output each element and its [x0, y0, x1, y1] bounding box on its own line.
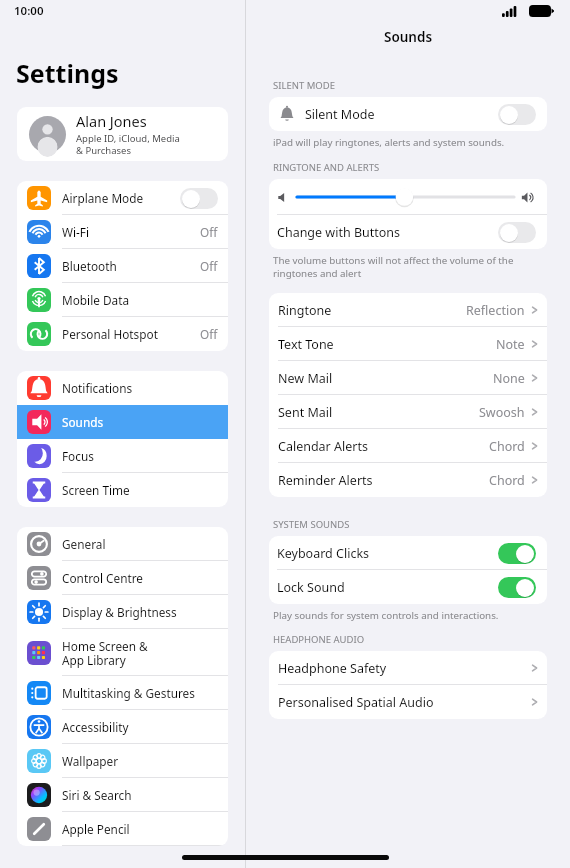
- staticText: Personal Hotspot: [62, 326, 200, 342]
- staticText: Note: [496, 336, 525, 353]
- button[interactable]: Text Tone: [269, 327, 547, 361]
- staticText: None: [493, 370, 525, 387]
- button[interactable]: Focus: [17, 439, 228, 473]
- button[interactable]: Accessibility: [17, 710, 228, 744]
- staticText: iPad will play ringtones, alerts and sys…: [273, 136, 505, 149]
- staticText: Off: [200, 224, 218, 240]
- staticText: Headphone Safety: [278, 660, 531, 677]
- staticText: 10:00: [14, 3, 44, 19]
- staticText: HEADPHONE AUDIO: [273, 633, 365, 646]
- staticText: Multitasking & Gestures: [62, 685, 218, 701]
- staticText: Mobile Data: [62, 292, 218, 308]
- staticText: Screen Time: [62, 482, 218, 498]
- button[interactable]: Display & Brightness: [17, 595, 228, 629]
- button[interactable]: Calendar Alerts: [269, 429, 547, 463]
- staticText: Off: [200, 258, 218, 274]
- staticText: SYSTEM SOUNDS: [273, 518, 350, 531]
- button[interactable]: Reminder Alerts: [269, 463, 547, 497]
- staticText: Wallpaper: [62, 753, 218, 769]
- staticText: RINGTONE AND ALERTS: [273, 161, 380, 174]
- staticText: Reminder Alerts: [278, 472, 489, 489]
- staticText: Chord: [489, 472, 525, 489]
- button[interactable]: On: [498, 577, 536, 598]
- staticText: Display & Brightness: [62, 604, 218, 620]
- staticText: Calendar Alerts: [278, 438, 489, 455]
- button[interactable]: Off: [498, 104, 536, 125]
- button[interactable]: Off: [180, 188, 218, 209]
- staticText: Bluetooth: [62, 258, 200, 274]
- staticText: Reflection: [466, 302, 525, 319]
- button[interactable]: Airplane Mode: [17, 181, 228, 215]
- staticText: Play sounds for system controls and inte…: [273, 609, 499, 622]
- staticText: New Mail: [278, 370, 493, 387]
- staticText: Notifications: [62, 380, 218, 396]
- staticText: Ringtone: [278, 302, 466, 319]
- button[interactable]: Control Centre: [17, 561, 228, 595]
- button[interactable]: Screen Time: [17, 473, 228, 507]
- button[interactable]: Off: [498, 222, 536, 243]
- button[interactable]: Sounds: [17, 405, 228, 439]
- staticText: Change with Buttons: [277, 224, 498, 241]
- button[interactable]: Multitasking & Gestures: [17, 676, 228, 710]
- button[interactable]: Sent Mail: [269, 395, 547, 429]
- staticText: The volume buttons will not affect the v…: [273, 254, 514, 280]
- button[interactable]: Keyboard Clicks: [269, 536, 547, 570]
- staticText: Off: [200, 326, 218, 342]
- staticText: Personalised Spatial Audio: [278, 694, 531, 711]
- button[interactable]: Personalised Spatial Audio: [269, 685, 547, 719]
- button[interactable]: [297, 186, 514, 208]
- button[interactable]: Personal Hotspot: [17, 317, 228, 351]
- button[interactable]: Headphone Safety: [269, 651, 547, 685]
- button[interactable]: Mobile Data: [17, 283, 228, 317]
- button[interactable]: On: [498, 543, 536, 564]
- staticText: Accessibility: [62, 719, 218, 735]
- button[interactable]: New Mail: [269, 361, 547, 395]
- button[interactable]: Lock Sound: [269, 570, 547, 604]
- button[interactable]: Ringtone: [269, 293, 547, 327]
- button[interactable]: Wi-Fi: [17, 215, 228, 249]
- button[interactable]: Bluetooth: [17, 249, 228, 283]
- button[interactable]: Siri & Search: [17, 778, 228, 812]
- staticText: Siri & Search: [62, 787, 218, 803]
- staticText: Swoosh: [479, 404, 525, 421]
- staticText: Apple Pencil: [62, 821, 218, 837]
- staticText: Silent Mode: [305, 106, 498, 123]
- staticText: Lock Sound: [277, 579, 498, 596]
- staticText: Apple ID, iCloud, Media & Purchases: [76, 132, 180, 157]
- staticText: Focus: [62, 448, 218, 464]
- staticText: Sent Mail: [278, 404, 479, 421]
- button[interactable]: Notifications: [17, 371, 228, 405]
- button[interactable]: Wallpaper: [17, 744, 228, 778]
- staticText: SILENT MODE: [273, 79, 335, 92]
- staticText: Chord: [489, 438, 525, 455]
- staticText: Sounds: [384, 28, 433, 46]
- button[interactable]: Home Screen & App Library: [17, 629, 228, 676]
- staticText: Keyboard Clicks: [277, 545, 498, 562]
- staticText: Home Screen & App Library: [62, 638, 218, 668]
- staticText: Airplane Mode: [62, 190, 180, 206]
- staticText: Text Tone: [278, 336, 496, 353]
- staticText: General: [62, 536, 218, 552]
- staticText: Settings: [16, 56, 119, 90]
- staticText: Alan Jones: [76, 111, 147, 131]
- button[interactable]: Apple Pencil: [17, 812, 228, 846]
- staticText: Sounds: [62, 414, 218, 430]
- button[interactable]: Silent Mode: [269, 97, 547, 131]
- staticText: Control Centre: [62, 570, 218, 586]
- button[interactable]: Change with Buttons: [269, 215, 547, 249]
- button[interactable]: Alan Jones: [17, 107, 228, 161]
- button[interactable]: General: [17, 527, 228, 561]
- staticText: Wi-Fi: [62, 224, 200, 240]
